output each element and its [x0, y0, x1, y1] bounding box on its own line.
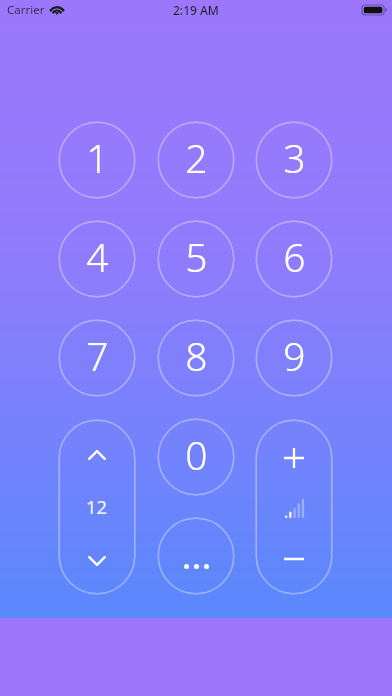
- button[interactable]: Add: [272, 438, 316, 478]
- staticText: 8: [185, 329, 208, 382]
- button[interactable]: 1: [58, 121, 136, 199]
- button[interactable]: 9: [255, 319, 333, 397]
- button[interactable]: Signal strength: [272, 491, 316, 525]
- button[interactable]: 3: [255, 121, 333, 199]
- staticText: 3: [283, 131, 306, 184]
- button[interactable]: 4: [58, 220, 136, 298]
- staticText: 12: [86, 494, 108, 519]
- button[interactable]: 0: [157, 418, 235, 496]
- staticText: 9: [283, 329, 306, 382]
- staticText: 6: [283, 230, 306, 283]
- button[interactable]: 7: [58, 319, 136, 397]
- button[interactable]: 6: [255, 220, 333, 298]
- button[interactable]: 8: [157, 319, 235, 397]
- staticText: 0: [185, 428, 208, 481]
- staticText: 7: [86, 329, 109, 382]
- staticText: 2: [185, 131, 208, 184]
- button[interactable]: More options: [157, 517, 235, 595]
- button[interactable]: Increase: [75, 435, 119, 475]
- staticText: 4: [86, 230, 109, 283]
- staticText: 2:19 AM: [173, 2, 219, 18]
- staticText: 1: [86, 131, 109, 184]
- button[interactable]: Decrease: [75, 541, 119, 581]
- staticText: Carrier: [7, 2, 45, 18]
- button[interactable]: 5: [157, 220, 235, 298]
- staticText: 5: [185, 230, 208, 283]
- button[interactable]: Subtract: [272, 539, 316, 579]
- button[interactable]: 2: [157, 121, 235, 199]
